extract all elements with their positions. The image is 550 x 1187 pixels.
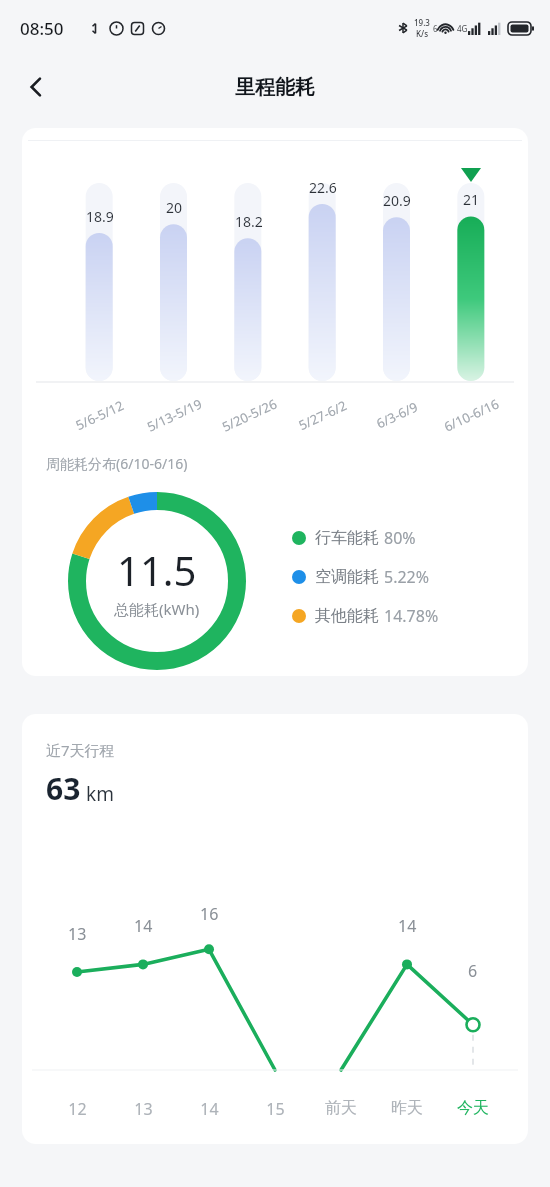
staticText: 14 — [134, 915, 153, 937]
staticText: 21 — [463, 190, 480, 209]
staticText: 20.9 — [383, 191, 411, 210]
staticText: 11.5 — [117, 543, 197, 597]
staticText: 20 — [166, 198, 183, 217]
staticText: 周能耗分布(6/10-6/16) — [46, 454, 188, 473]
staticText: 6/10-6/16 — [441, 394, 502, 436]
staticText: 14 — [398, 915, 417, 937]
button[interactable]: 13 — [110, 1098, 176, 1120]
staticText: 4G — [457, 23, 468, 34]
staticText: 18.2 — [235, 212, 263, 231]
button[interactable]: 空调能耗 — [292, 566, 528, 588]
staticText: 行车能耗 — [315, 528, 379, 548]
staticText: 13 — [68, 923, 87, 945]
staticText: 5/6-5/12 — [73, 396, 127, 434]
staticText: 近7天行程 — [46, 740, 115, 760]
staticText: 6 — [468, 960, 478, 982]
staticText: 14.78% — [384, 605, 439, 627]
button[interactable]: 今天 — [440, 1098, 506, 1118]
button[interactable]: 12 — [44, 1098, 110, 1120]
button[interactable]: 昨天 — [374, 1098, 440, 1118]
button[interactable]: 前天 — [308, 1098, 374, 1118]
staticText: 空调能耗 — [315, 567, 379, 587]
staticText: 5/27-6/2 — [296, 396, 350, 434]
staticText: 里程能耗 — [235, 75, 315, 100]
staticText: 08:50 — [20, 17, 64, 40]
staticText: 前天 — [325, 1098, 357, 1118]
button[interactable]: 15 — [242, 1098, 308, 1120]
staticText: 总能耗(kWh) — [114, 599, 200, 619]
staticText: 5/20-5/26 — [219, 394, 280, 436]
staticText: 今天 — [457, 1098, 489, 1118]
staticText: 22.6 — [309, 178, 337, 197]
staticText: 6/3-6/9 — [373, 397, 421, 432]
staticText: 5/13-5/19 — [144, 394, 205, 436]
staticText: 14 — [200, 1098, 219, 1120]
button[interactable]: 其他能耗 — [292, 605, 528, 627]
staticText: K/s — [416, 28, 429, 39]
staticText: 5.22% — [384, 566, 430, 588]
staticText: 昨天 — [391, 1098, 423, 1118]
staticText: 16 — [200, 903, 219, 925]
staticText: 6 — [433, 23, 438, 34]
staticText: 12 — [68, 1098, 87, 1120]
staticText: 63 — [46, 768, 81, 809]
button[interactable]: 行车能耗 — [292, 527, 528, 549]
staticText: 15 — [266, 1098, 285, 1120]
staticText: 其他能耗 — [315, 606, 379, 626]
staticText: 80% — [384, 527, 416, 549]
staticText: km — [86, 781, 114, 807]
staticText: 13 — [134, 1098, 153, 1120]
staticText: 18.9 — [86, 207, 114, 226]
button[interactable]: Back — [12, 63, 60, 111]
staticText: 19.3 — [414, 17, 430, 28]
button[interactable]: 14 — [176, 1098, 242, 1120]
